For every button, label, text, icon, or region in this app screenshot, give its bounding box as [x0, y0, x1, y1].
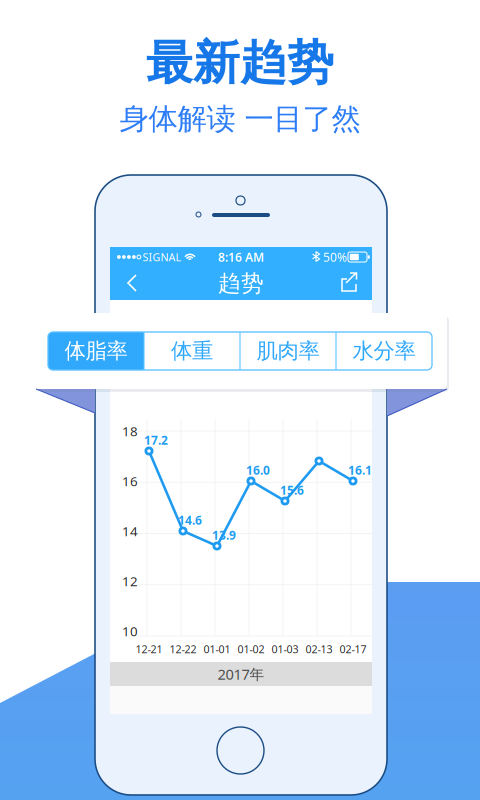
staticText: 01-03 — [271, 642, 298, 656]
staticText: 13.9 — [212, 527, 236, 543]
button[interactable]: Back — [116, 266, 150, 300]
staticText: 12 — [122, 572, 138, 590]
staticText: 最新趋势 — [146, 34, 334, 92]
staticText: 16.0 — [246, 462, 270, 478]
button[interactable]: 肌肉率 — [240, 332, 336, 370]
staticText: 01-02 — [237, 642, 264, 656]
staticText: 12-21 — [135, 642, 162, 656]
staticText: 体重 — [171, 338, 213, 364]
staticText: 18 — [122, 422, 138, 440]
staticText: 12-22 — [169, 642, 196, 656]
staticText: 2017年 — [217, 664, 264, 684]
button[interactable]: 体脂率 — [48, 332, 144, 370]
staticText: 14.6 — [178, 512, 202, 528]
staticText: 02-17 — [339, 642, 366, 656]
staticText: 14 — [122, 522, 138, 540]
button[interactable]: Share — [332, 266, 366, 300]
staticText: 10 — [122, 622, 138, 640]
staticText: SIGNAL — [142, 250, 181, 264]
staticText: 50% — [323, 249, 347, 265]
staticText: 15.6 — [280, 482, 304, 498]
staticText: 体脂率 — [64, 338, 127, 364]
staticText: 17.2 — [144, 432, 168, 448]
staticText: 8:16 AM — [218, 249, 264, 265]
button[interactable]: 体重 — [144, 332, 240, 370]
staticText: 16.1 — [348, 462, 372, 478]
staticText: 身体解读 一目了然 — [119, 101, 360, 137]
button[interactable]: 水分率 — [336, 332, 432, 370]
staticText: 02-13 — [305, 642, 332, 656]
staticText: 01-01 — [203, 642, 230, 656]
staticText: 16 — [122, 472, 138, 490]
staticText: 肌肉率 — [256, 338, 319, 364]
staticText: 趋势 — [218, 270, 264, 297]
staticText: 水分率 — [352, 338, 415, 364]
